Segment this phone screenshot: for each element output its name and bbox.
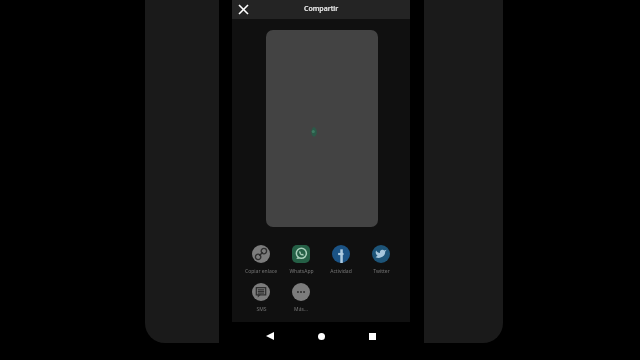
button[interactable]: Recientes xyxy=(362,326,382,346)
button[interactable]: Inicio xyxy=(311,326,331,346)
staticText: Twitter xyxy=(373,268,390,275)
button[interactable]: Atrás xyxy=(260,326,280,346)
button[interactable]: Cerrar xyxy=(235,1,251,17)
staticText: SMS xyxy=(256,306,267,313)
button[interactable]: WhatsApp xyxy=(281,245,321,275)
button[interactable]: SMS xyxy=(241,283,281,313)
staticText: Actividad xyxy=(330,268,352,275)
staticText: Más... xyxy=(294,306,308,313)
button[interactable]: Copiar enlace xyxy=(241,245,281,275)
staticText: WhatsApp xyxy=(289,268,314,275)
staticText: Copiar enlace xyxy=(245,268,277,275)
button[interactable]: Actividad xyxy=(321,245,361,275)
button[interactable]: Más... xyxy=(281,283,321,313)
staticText: Compartir xyxy=(304,4,339,14)
button[interactable]: Twitter xyxy=(361,245,401,275)
